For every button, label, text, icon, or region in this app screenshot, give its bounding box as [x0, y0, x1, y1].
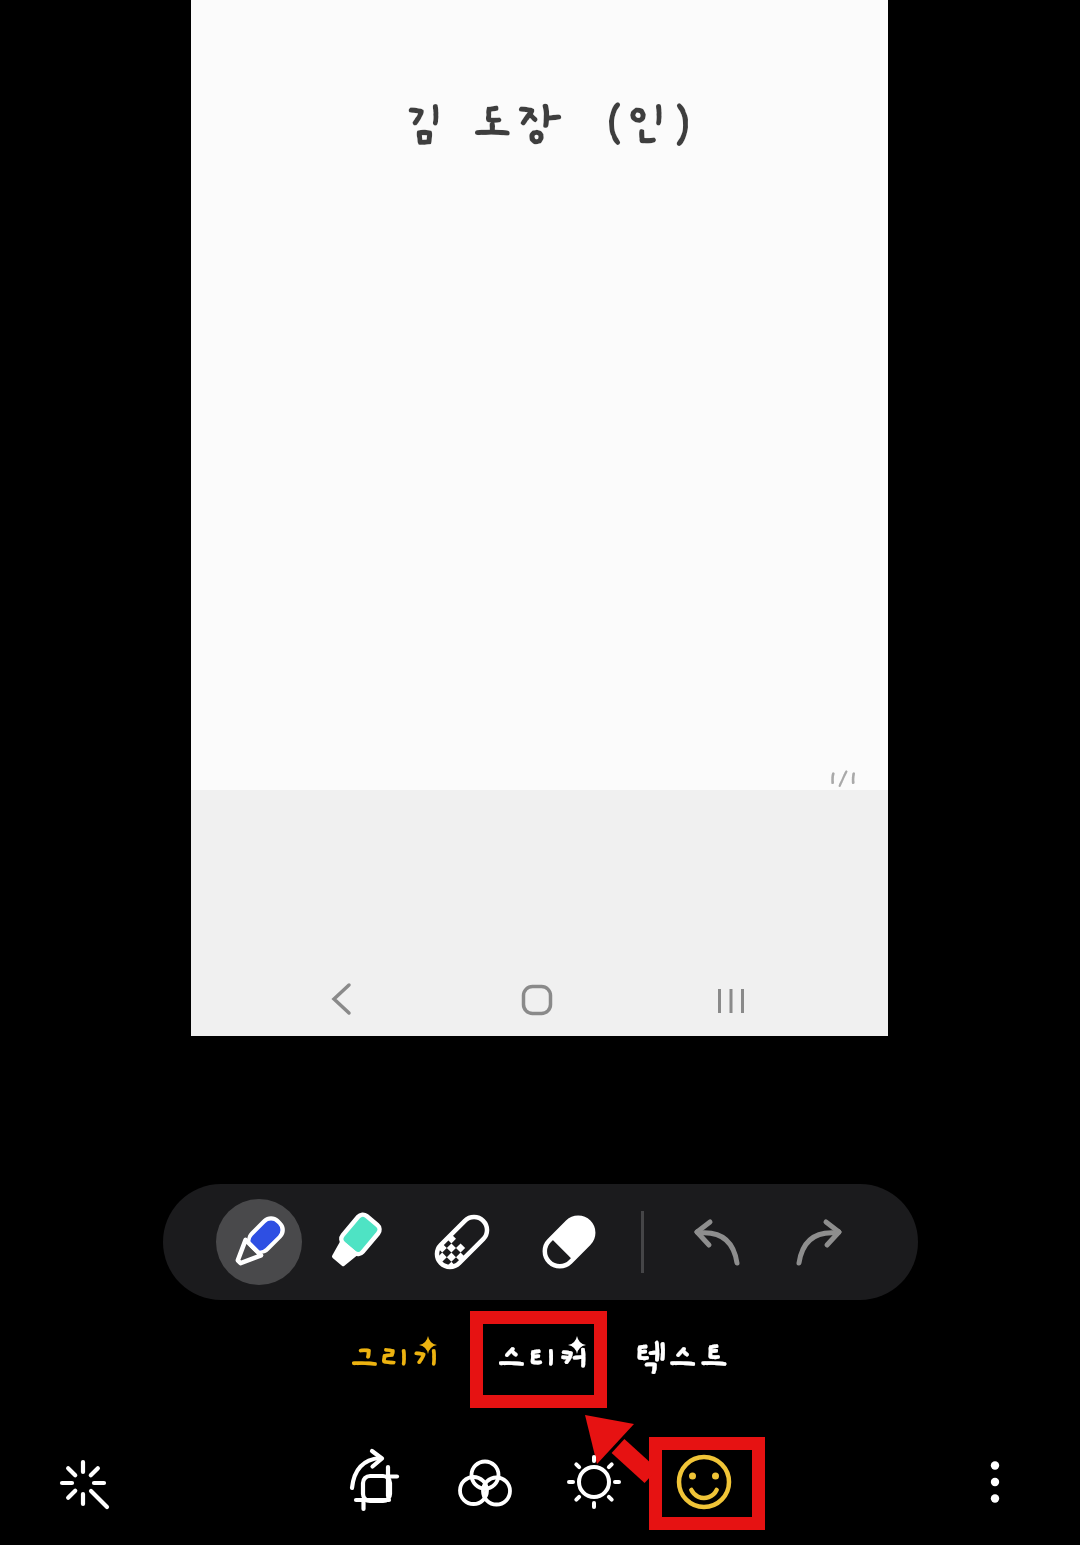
button[interactable] — [38, 1438, 128, 1528]
staticText: 텍스트 — [635, 1340, 729, 1380]
button[interactable]: 텍스트 — [607, 1330, 757, 1390]
button[interactable] — [330, 1439, 420, 1529]
staticText: 김 도장 (인) — [403, 97, 694, 153]
button[interactable] — [549, 1437, 639, 1527]
button[interactable] — [674, 1202, 758, 1286]
staticText: 스티커 — [495, 1340, 589, 1380]
button[interactable] — [778, 1202, 862, 1286]
button[interactable] — [527, 1200, 611, 1284]
button[interactable] — [420, 1200, 504, 1284]
button[interactable] — [701, 971, 761, 1031]
button[interactable]: 그리기 — [320, 1330, 470, 1390]
button[interactable] — [216, 1199, 302, 1285]
button[interactable]: 스티커 — [467, 1330, 617, 1390]
button[interactable] — [950, 1437, 1040, 1527]
staticText: 그리기 — [348, 1340, 442, 1380]
button[interactable] — [659, 1437, 749, 1527]
button[interactable] — [311, 969, 371, 1029]
button[interactable] — [507, 970, 567, 1030]
button[interactable] — [312, 1200, 396, 1284]
button[interactable] — [440, 1439, 530, 1529]
staticText: 1/1 — [828, 768, 859, 791]
